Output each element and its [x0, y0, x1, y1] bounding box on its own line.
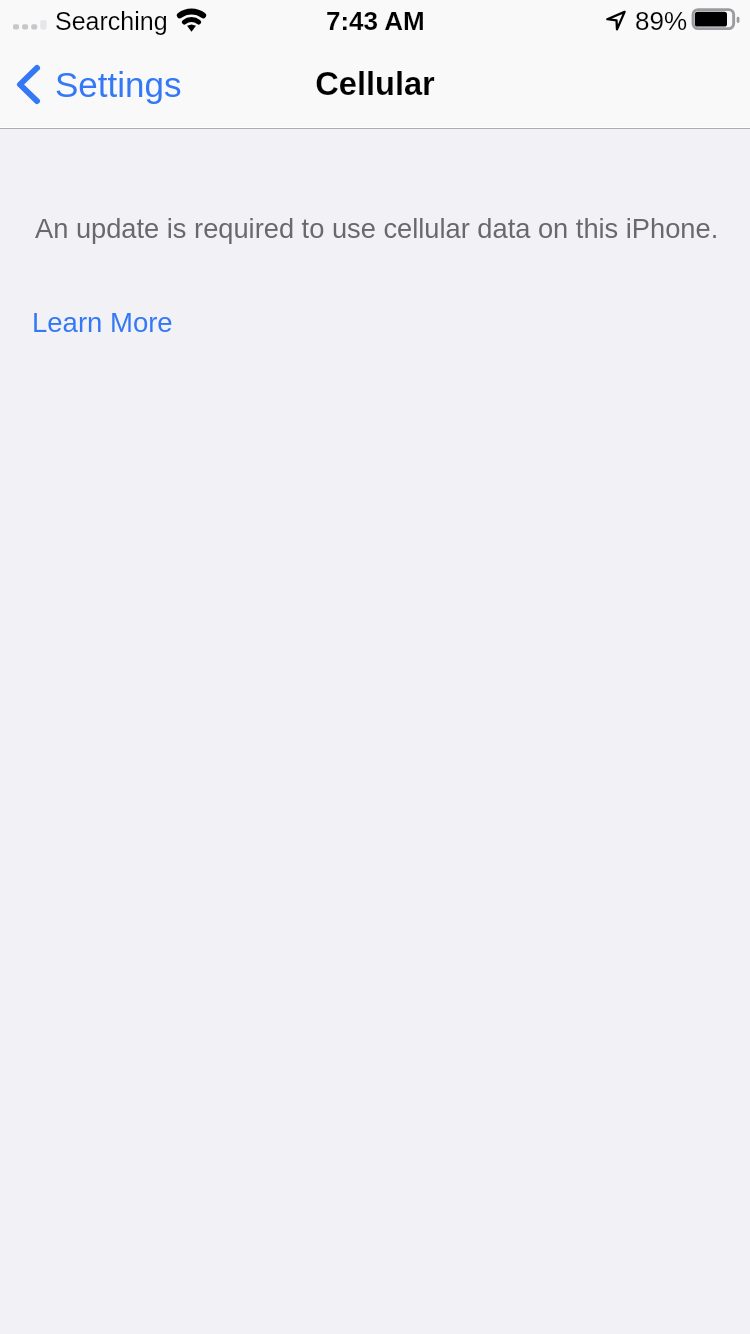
- staticText: Learn More: [32, 307, 173, 338]
- staticText: 89%: [635, 6, 688, 35]
- other: Wi-Fi: [175, 6, 209, 34]
- staticText: 7:43 AM: [326, 6, 425, 35]
- staticText: An update is required to use cellular da…: [35, 213, 719, 243]
- staticText: Settings: [55, 65, 182, 104]
- staticText: Cellular: [0, 65, 750, 101]
- other: Location services: [606, 10, 627, 31]
- other: Cellular signal: [13, 19, 49, 31]
- button[interactable]: Back to Settings: [8, 56, 198, 108]
- staticText: Searching: [55, 7, 168, 35]
- button[interactable]: Learn More: [30, 307, 174, 343]
- other: Battery 89 percent: [690, 8, 742, 32]
